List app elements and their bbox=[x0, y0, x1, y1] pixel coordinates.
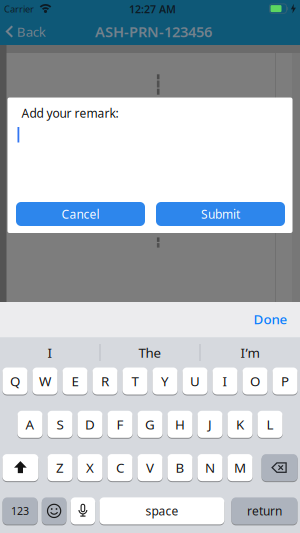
staticText: H bbox=[175, 415, 185, 433]
staticText: ASH-PRN-123456 bbox=[95, 22, 212, 41]
button[interactable]: E bbox=[62, 367, 88, 394]
button[interactable]: T bbox=[122, 367, 148, 394]
staticText: Submit bbox=[201, 206, 240, 222]
button[interactable]: L bbox=[257, 411, 283, 438]
button[interactable]: M bbox=[227, 454, 253, 481]
button[interactable] bbox=[71, 497, 95, 524]
button[interactable]: C bbox=[107, 454, 133, 481]
staticText: Y bbox=[161, 372, 169, 390]
staticText: I bbox=[47, 344, 52, 361]
staticText: Carrier bbox=[4, 3, 34, 15]
staticText: space bbox=[145, 503, 178, 519]
staticText: B bbox=[175, 459, 184, 476]
button[interactable]: A bbox=[17, 411, 43, 438]
button[interactable]: W bbox=[32, 367, 58, 394]
staticText: I bbox=[222, 372, 227, 390]
staticText: D bbox=[85, 415, 95, 433]
staticText: Add your remark: bbox=[21, 105, 118, 121]
button[interactable]: space bbox=[99, 497, 224, 524]
button[interactable]: J bbox=[197, 411, 223, 438]
staticText: L bbox=[266, 415, 273, 433]
button[interactable] bbox=[262, 454, 298, 481]
staticText: T bbox=[131, 372, 138, 390]
button[interactable]: Done bbox=[253, 310, 287, 328]
button[interactable]: O bbox=[242, 367, 268, 394]
staticText: Cancel bbox=[61, 206, 99, 222]
staticText: F bbox=[116, 415, 123, 433]
staticText: Q bbox=[10, 372, 20, 390]
staticText: A bbox=[25, 415, 34, 433]
button[interactable]: return bbox=[231, 497, 297, 524]
staticText: G bbox=[145, 415, 155, 433]
button[interactable]: P bbox=[272, 367, 298, 394]
button[interactable]: I bbox=[2, 338, 98, 366]
button[interactable]: V bbox=[137, 454, 163, 481]
staticText: U bbox=[190, 372, 200, 390]
button[interactable]: S bbox=[47, 411, 73, 438]
staticText: R bbox=[101, 372, 109, 390]
staticText: I’m bbox=[240, 344, 259, 361]
button[interactable]: B bbox=[167, 454, 193, 481]
staticText: 12:27 AM bbox=[129, 2, 176, 16]
staticText: The bbox=[138, 344, 161, 361]
staticText: P bbox=[281, 372, 289, 390]
button[interactable]: H bbox=[167, 411, 193, 438]
staticText: M bbox=[234, 459, 246, 476]
staticText: N bbox=[205, 459, 215, 476]
button[interactable]: G bbox=[137, 411, 163, 438]
button[interactable]: Y bbox=[152, 367, 178, 394]
staticText: E bbox=[71, 372, 78, 390]
button[interactable]: F bbox=[107, 411, 133, 438]
staticText: Done bbox=[253, 310, 287, 328]
staticText: V bbox=[146, 459, 154, 476]
staticText: C bbox=[116, 459, 124, 476]
staticText: X bbox=[86, 459, 94, 476]
staticText: Back bbox=[17, 23, 46, 40]
button[interactable]: N bbox=[197, 454, 223, 481]
button[interactable] bbox=[42, 497, 66, 524]
button[interactable]: 123 bbox=[3, 497, 38, 524]
staticText: return bbox=[247, 503, 282, 519]
staticText: W bbox=[39, 372, 51, 390]
staticText: O bbox=[250, 372, 260, 390]
button[interactable]: K bbox=[227, 411, 253, 438]
staticText: K bbox=[236, 415, 244, 433]
button[interactable]: U bbox=[182, 367, 208, 394]
button[interactable]: Submit bbox=[156, 202, 285, 226]
button[interactable]: R bbox=[92, 367, 118, 394]
button[interactable]: Z bbox=[47, 454, 73, 481]
button[interactable] bbox=[2, 454, 38, 481]
button[interactable]: I bbox=[212, 367, 238, 394]
button[interactable]: X bbox=[77, 454, 103, 481]
staticText: Z bbox=[56, 459, 64, 476]
staticText: J bbox=[208, 415, 212, 433]
staticText: 123 bbox=[11, 504, 29, 518]
button[interactable]: Q bbox=[2, 367, 28, 394]
button[interactable]: Cancel bbox=[16, 202, 145, 226]
button[interactable]: Back bbox=[5, 23, 46, 40]
button[interactable]: D bbox=[77, 411, 103, 438]
staticText: S bbox=[56, 415, 63, 433]
button[interactable]: The bbox=[102, 338, 198, 366]
button[interactable]: I’m bbox=[202, 338, 298, 366]
